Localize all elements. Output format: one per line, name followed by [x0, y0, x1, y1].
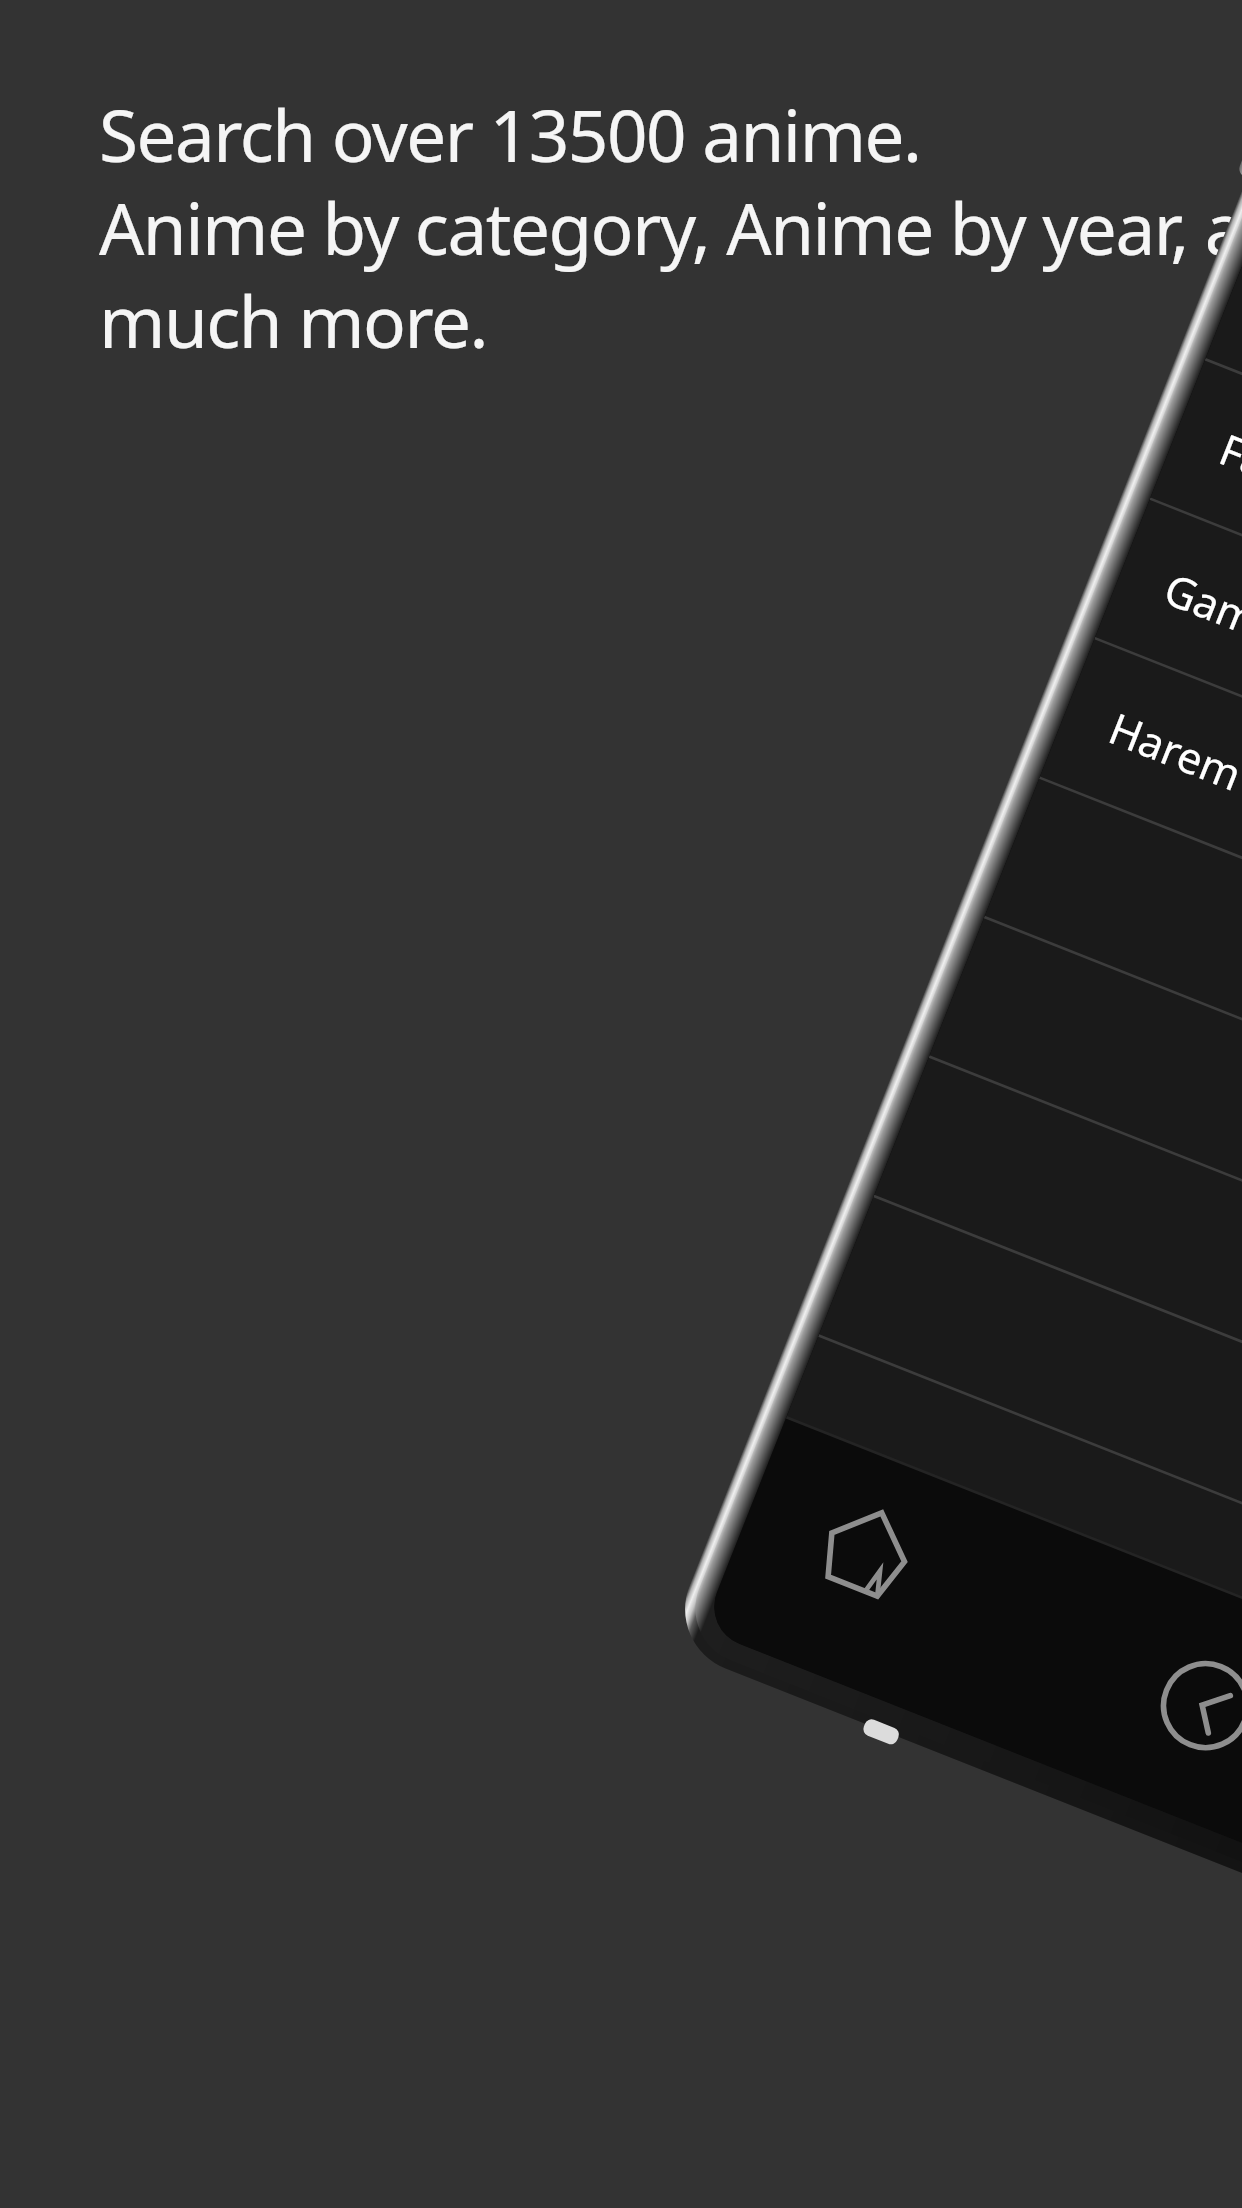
button[interactable]: Anime search promo screen [0, 0, 1242, 2208]
